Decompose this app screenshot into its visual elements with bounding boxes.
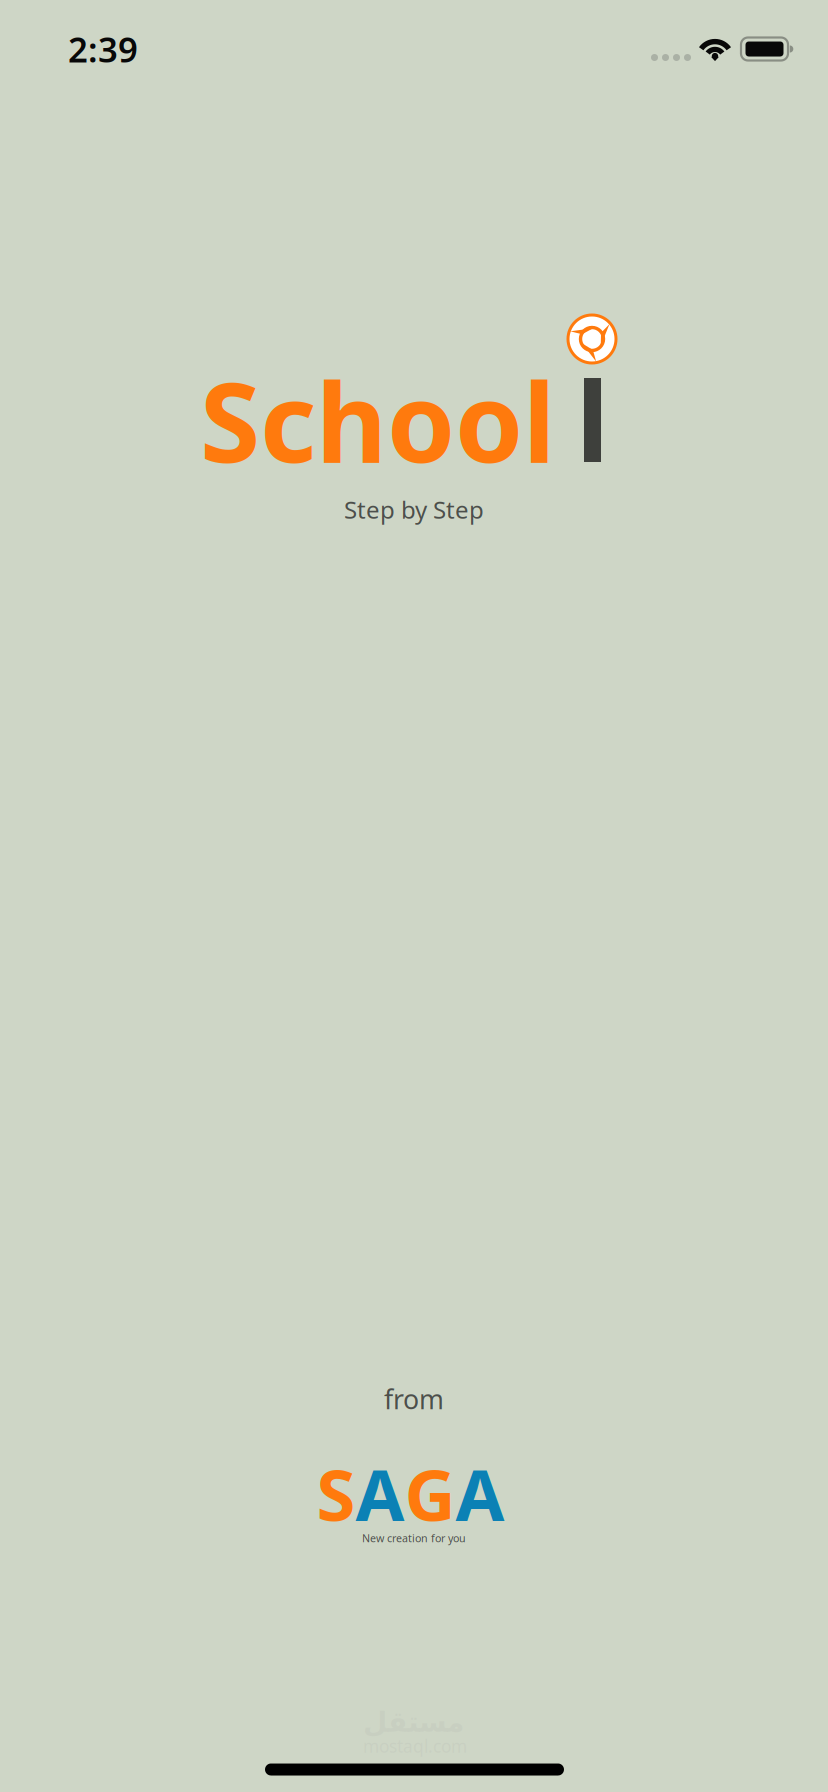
staticText: A [455, 1447, 504, 1540]
staticText: Step by Step [344, 494, 484, 525]
staticText: School [200, 347, 556, 493]
staticText: 2:39 [68, 26, 138, 72]
staticText: from [384, 1381, 444, 1417]
staticText: G [404, 1447, 455, 1540]
staticText: S [316, 1447, 355, 1540]
staticText: A [355, 1447, 404, 1540]
staticText: New creation for you [362, 1531, 466, 1545]
